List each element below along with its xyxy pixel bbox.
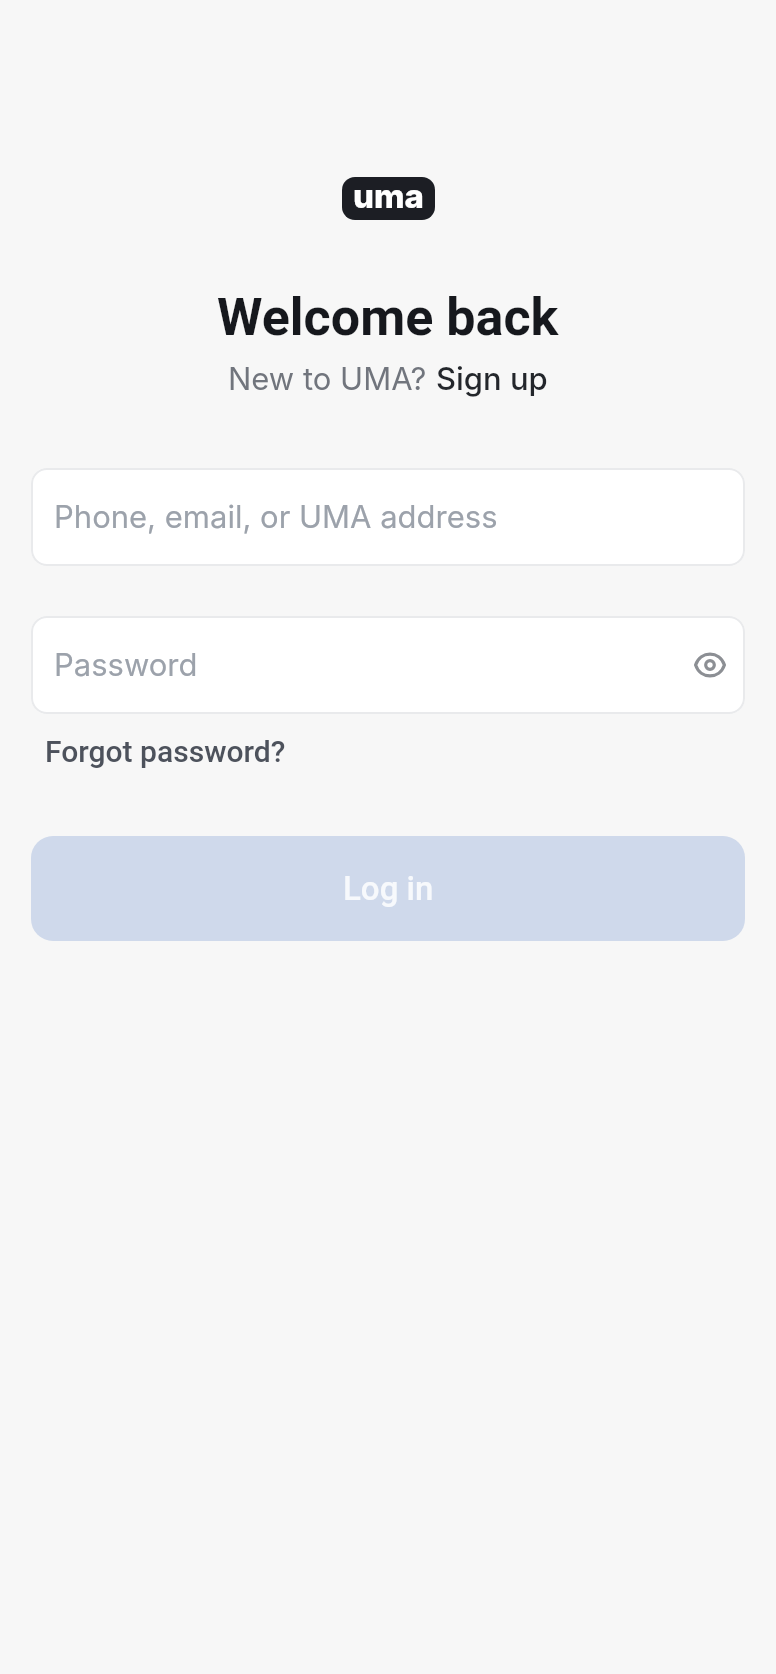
button[interactable]: Log in [31,836,745,941]
staticText: Log in [343,869,434,908]
button[interactable]: Password [31,616,745,714]
staticText: Phone, email, or UMA address [54,498,498,536]
button[interactable]: Sign up [436,360,548,398]
staticText: uma [353,176,424,216]
button[interactable] [694,649,726,681]
staticText: Password [54,646,198,684]
button[interactable]: Phone, email, or UMA address [31,468,745,566]
staticText: New to UMA? [228,360,436,398]
button[interactable]: Forgot password? [45,734,286,769]
staticText: Welcome back [217,287,559,348]
